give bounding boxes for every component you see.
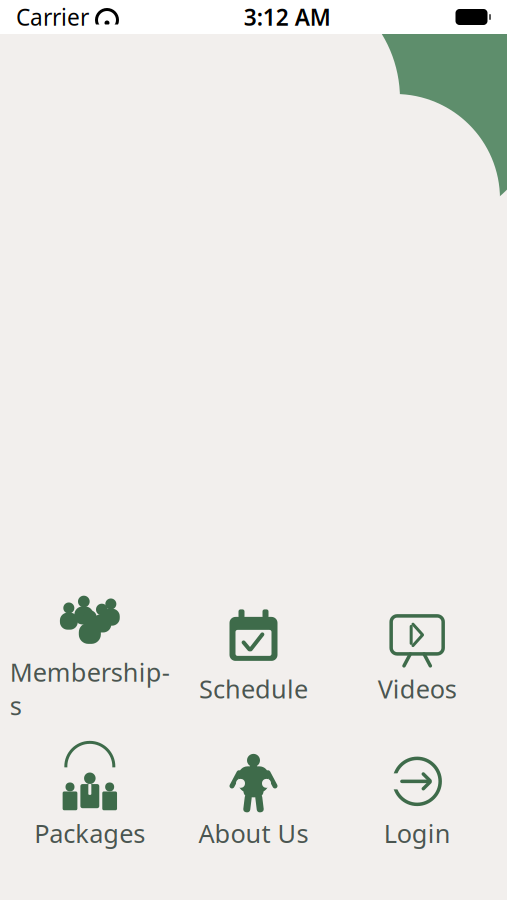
- staticText: Packages: [34, 816, 145, 850]
- button[interactable]: Schedule: [172, 604, 335, 709]
- button[interactable]: Memberships: [8, 587, 172, 726]
- staticText: 3:12 AM: [244, 2, 331, 32]
- staticText: Memberships: [10, 655, 170, 722]
- button[interactable]: Videos: [335, 604, 499, 709]
- staticText: Carrier: [16, 2, 89, 32]
- staticText: Videos: [378, 672, 457, 705]
- staticText: Login: [384, 816, 451, 850]
- staticText: About Us: [198, 816, 308, 850]
- staticText: Schedule: [199, 672, 308, 705]
- button[interactable]: Packages: [8, 748, 172, 854]
- button[interactable]: Login: [335, 748, 499, 854]
- button[interactable]: About Us: [172, 748, 335, 854]
